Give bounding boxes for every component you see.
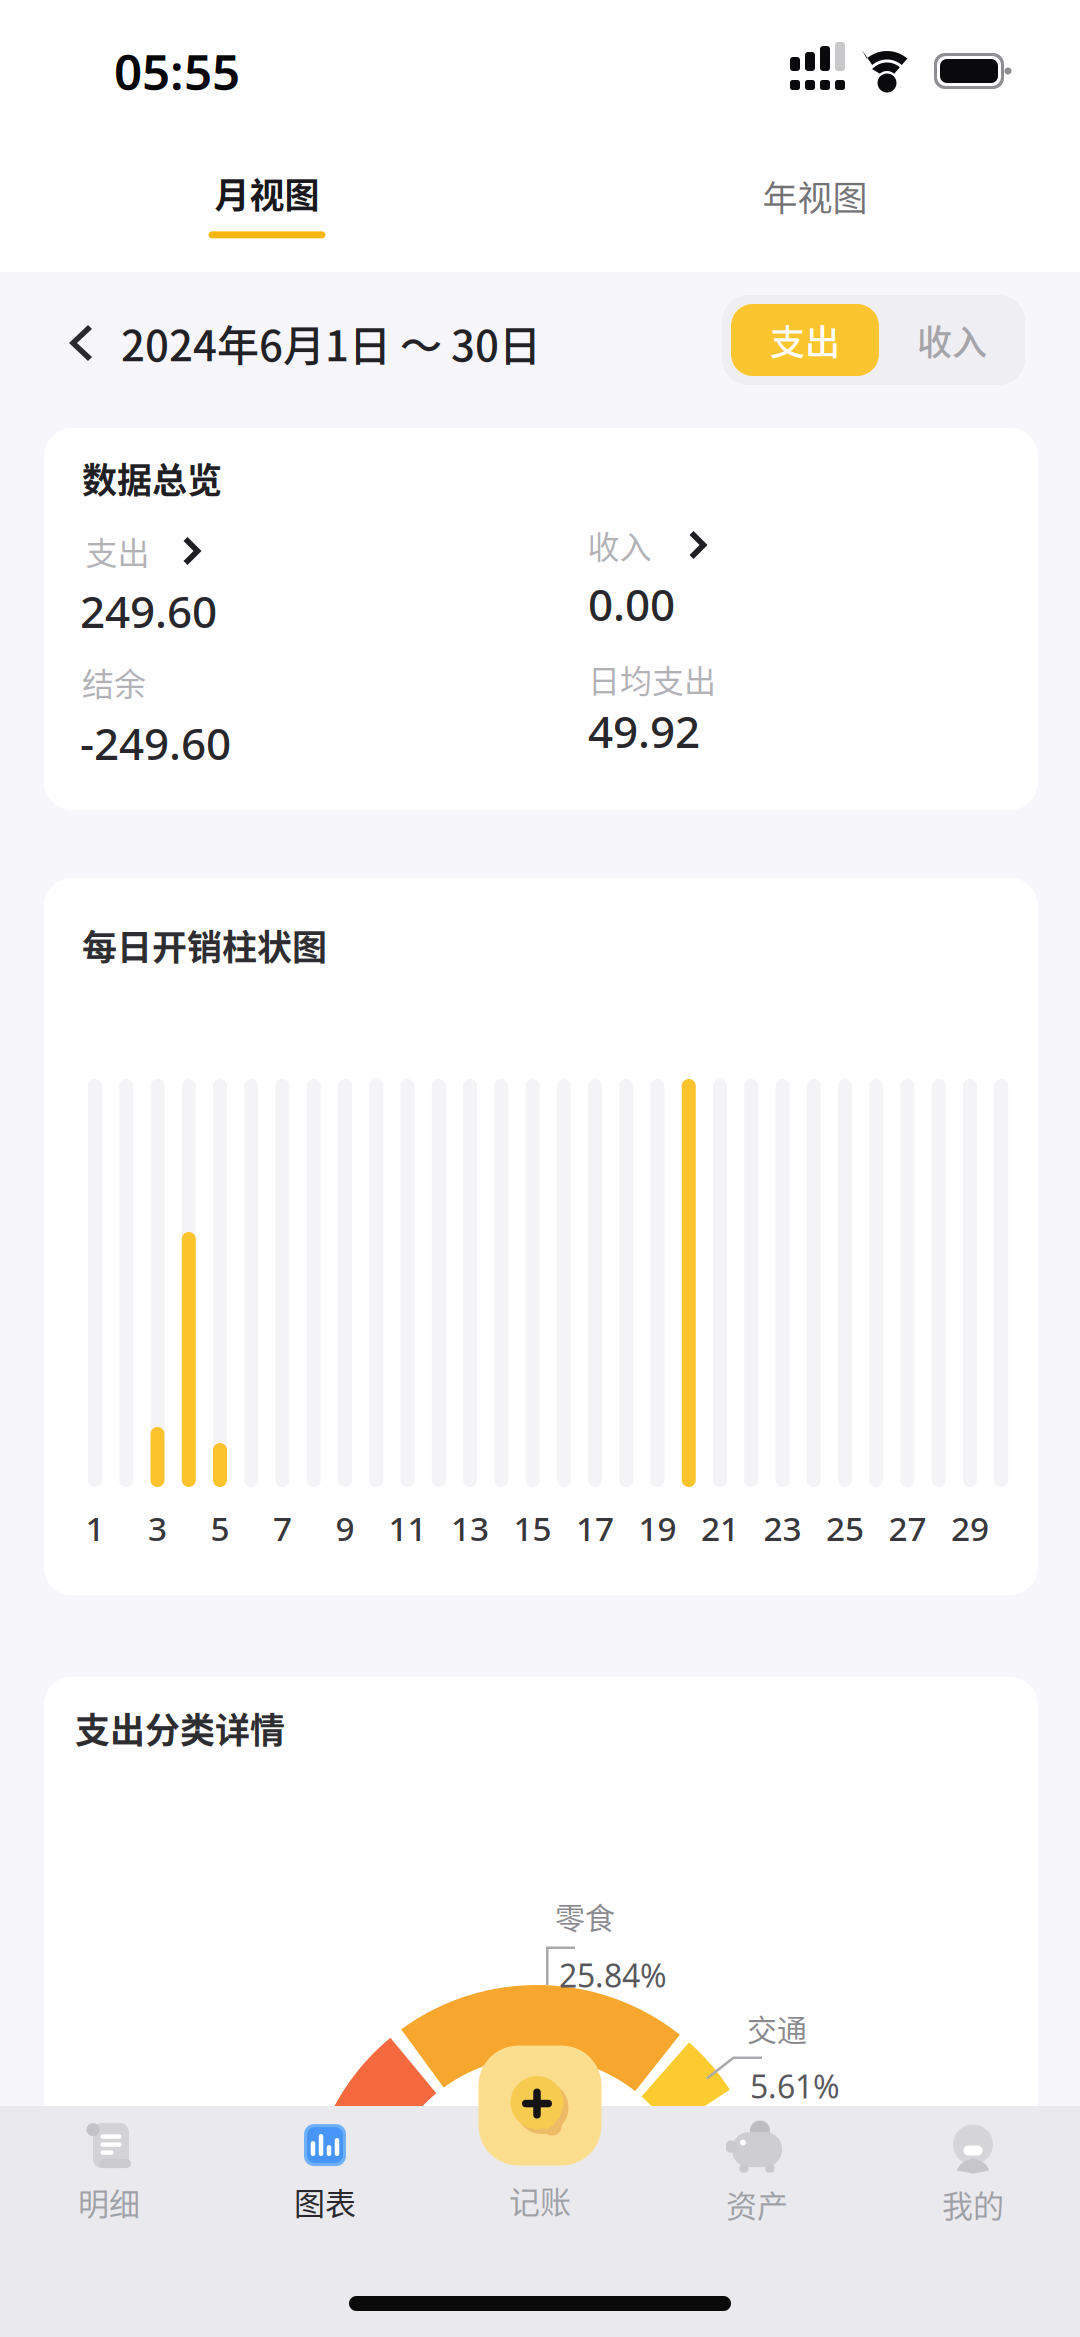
button[interactable]: 明细 xyxy=(78,2122,140,2224)
staticText: 收入 xyxy=(587,522,651,568)
staticText: 零食 xyxy=(555,1894,615,1938)
staticText: 49.92 xyxy=(588,702,700,760)
staticText: 15 xyxy=(513,1506,551,1550)
staticText: 日均支出 xyxy=(588,656,716,702)
button[interactable]: 支出 xyxy=(731,304,879,376)
staticText: 13 xyxy=(451,1506,489,1550)
staticText: 图表 xyxy=(294,2179,356,2224)
button[interactable]: 资产 xyxy=(726,2122,788,2226)
button[interactable]: 记账 xyxy=(478,2046,601,2222)
staticText: 收入 xyxy=(917,315,987,365)
staticText: -249.60 xyxy=(80,714,231,772)
staticText: 支出 xyxy=(85,528,149,574)
button[interactable]: 月视图 xyxy=(208,168,325,238)
button[interactable]: 上一月 xyxy=(65,322,91,364)
staticText: 7 xyxy=(273,1506,292,1550)
button[interactable]: 年视图 xyxy=(762,171,867,221)
staticText: 9 xyxy=(335,1506,354,1550)
staticText: 数据总览 xyxy=(82,453,222,503)
staticText: 5 xyxy=(210,1506,229,1550)
staticText: 21 xyxy=(701,1506,739,1550)
staticText: 2024年6月1日 ～ 30日 xyxy=(121,313,541,373)
staticText: 结余 xyxy=(82,659,146,705)
staticText: 19 xyxy=(638,1506,676,1550)
staticText: 17 xyxy=(576,1506,614,1550)
staticText: 支出 xyxy=(770,315,840,365)
staticText: 明细 xyxy=(78,2180,140,2224)
staticText: 支出分类详情 xyxy=(75,1703,285,1753)
staticText: 249.60 xyxy=(80,582,217,640)
button[interactable]: 图表 xyxy=(294,2124,356,2224)
staticText: 25.84% xyxy=(559,1954,667,1996)
staticText: 1 xyxy=(85,1506,104,1550)
staticText: 0.00 xyxy=(588,575,675,633)
staticText: 27 xyxy=(888,1506,926,1550)
button[interactable]: 收入 xyxy=(587,522,708,568)
staticText: 29 xyxy=(951,1506,989,1550)
staticText: 25 xyxy=(826,1506,864,1550)
staticText: 年视图 xyxy=(762,171,867,221)
button[interactable]: 收入 xyxy=(917,315,987,365)
staticText: 每日开销柱状图 xyxy=(82,920,327,970)
button[interactable]: 支出 xyxy=(85,528,202,574)
staticText: 资产 xyxy=(726,2182,788,2226)
staticText: 交通 xyxy=(747,2006,807,2050)
staticText: 3 xyxy=(148,1506,167,1550)
staticText: 23 xyxy=(763,1506,801,1550)
staticText: 我的 xyxy=(942,2182,1004,2226)
staticText: 记账 xyxy=(509,2178,571,2222)
staticText: 11 xyxy=(388,1506,426,1550)
staticText: 5.61% xyxy=(750,2065,840,2107)
staticText: 05:55 xyxy=(114,38,240,104)
button[interactable]: 我的 xyxy=(942,2124,1004,2226)
staticText: 月视图 xyxy=(214,168,319,218)
